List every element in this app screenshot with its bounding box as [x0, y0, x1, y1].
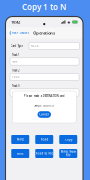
staticText: Copy	[65, 138, 72, 141]
staticText: Write	[16, 138, 24, 141]
staticText: Track 3	[12, 84, 20, 88]
button[interactable]: Write from file	[59, 149, 77, 158]
staticText: 000	[12, 91, 18, 94]
staticText: Track 2	[12, 69, 20, 72]
staticText: 1000	[12, 75, 20, 79]
staticText: Erase	[17, 152, 24, 155]
staticText: Write from file	[60, 150, 76, 157]
button[interactable]: Read	[35, 135, 53, 144]
button[interactable]: Write	[11, 135, 29, 144]
staticText: Please make a DESTINATION card	[24, 94, 65, 98]
staticText: HSRP Devices	[12, 31, 29, 35]
button[interactable]: Read to file	[35, 149, 53, 158]
staticText: Swipe count:0	[34, 104, 54, 107]
button[interactable]: Cancel	[37, 111, 51, 118]
staticText: Operations	[33, 30, 55, 36]
staticText: Read to file	[35, 152, 53, 155]
staticText: %B4	[12, 60, 18, 63]
staticText: Track 1	[12, 53, 20, 57]
staticText: Copy 1 to N	[22, 2, 66, 12]
staticText: HI-Co	[31, 44, 39, 48]
button[interactable]: HSRP Devices	[9, 30, 29, 36]
button[interactable]: Erase	[11, 149, 29, 158]
staticText: Card Type	[10, 44, 23, 48]
staticText: Read	[40, 138, 48, 141]
staticText: 10:42	[11, 19, 20, 25]
button[interactable]: Copy	[59, 135, 77, 144]
staticText: Cancel	[39, 113, 49, 116]
